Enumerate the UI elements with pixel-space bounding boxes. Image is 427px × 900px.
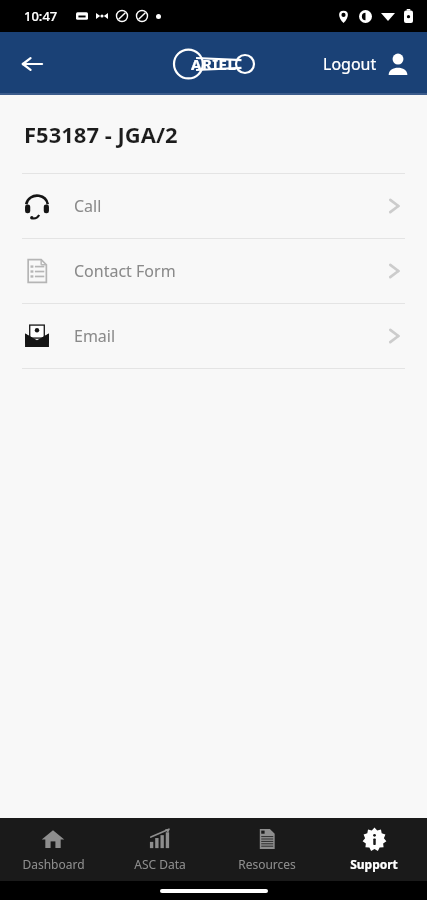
- staticText: F53187 - JGA/2: [24, 119, 178, 149]
- button[interactable]: ASC Data: [106, 818, 213, 881]
- staticText: Email: [74, 325, 383, 347]
- staticText: Dashboard: [22, 856, 85, 872]
- staticText: Call: [74, 195, 383, 217]
- button[interactable]: Dashboard: [0, 818, 106, 881]
- button[interactable]: Contact Form: [0, 239, 427, 303]
- staticText: Support: [350, 856, 398, 872]
- staticText: Resources: [238, 856, 296, 872]
- button[interactable]: Email: [0, 304, 427, 368]
- button[interactable]: Logout: [319, 45, 415, 83]
- staticText: 10:47: [24, 7, 58, 25]
- button[interactable]: Back: [8, 40, 56, 88]
- button[interactable]: Call: [0, 174, 427, 238]
- staticText: ASC Data: [134, 856, 186, 872]
- button[interactable]: Resources: [213, 818, 320, 881]
- staticText: Contact Form: [74, 260, 383, 282]
- staticText: Logout: [323, 53, 377, 75]
- button[interactable]: Support: [320, 818, 427, 881]
- staticText: ARIEL: [191, 54, 237, 74]
